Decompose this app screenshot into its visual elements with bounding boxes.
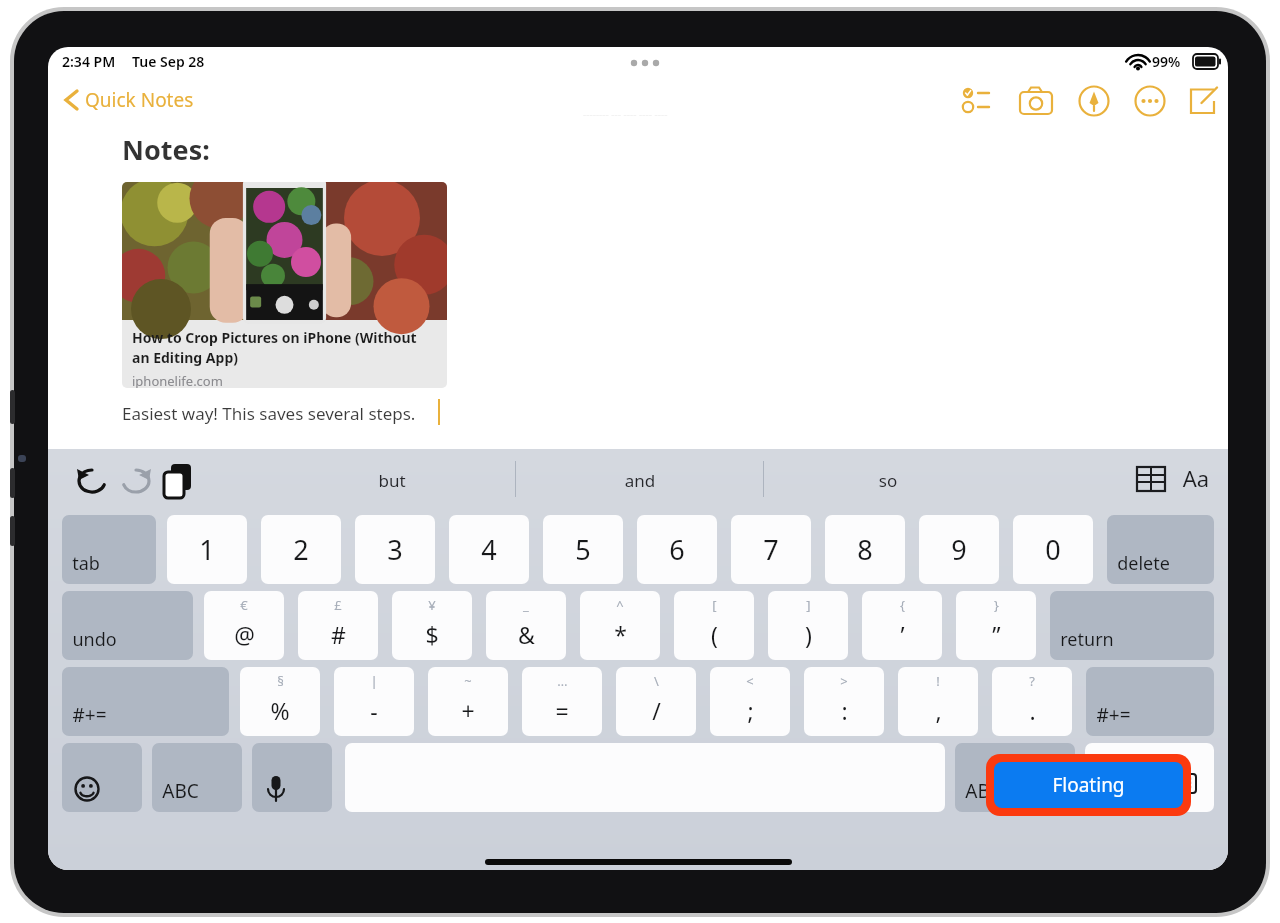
staticText: 4 (481, 531, 497, 568)
button[interactable]: Emoji (62, 743, 142, 812)
staticText: % (270, 695, 290, 726)
staticText: #+= (1096, 702, 1131, 728)
staticText: Easiest way! This saves several steps. (122, 402, 416, 425)
staticText: … (557, 672, 568, 690)
button[interactable]: ABC (152, 743, 242, 812)
staticText: . (1029, 695, 1036, 726)
staticText: ) (805, 619, 812, 650)
button[interactable]: 6 (637, 515, 717, 584)
button[interactable]: Checklist (960, 83, 996, 119)
staticText: \ (654, 672, 659, 690)
button[interactable]: [ (674, 591, 754, 660)
button[interactable]: | (334, 667, 414, 736)
staticText: ] (806, 596, 811, 614)
staticText: [ (712, 596, 717, 614)
staticText: 6 (669, 531, 685, 568)
button[interactable]: How to Crop Pictures on iPhone (Without … (122, 182, 447, 388)
staticText: 0 (1045, 531, 1061, 568)
staticText: ABC (162, 778, 199, 804)
staticText: iphonelife.com (132, 372, 223, 388)
staticText: undo (72, 627, 117, 652)
button[interactable]: } (956, 591, 1036, 660)
button[interactable]: 4 (449, 515, 529, 584)
button[interactable]: 2 (261, 515, 341, 584)
staticText: ABC (965, 778, 1002, 804)
button[interactable]: … (522, 667, 602, 736)
button[interactable]: Markup (1076, 83, 1112, 119)
staticText: 5 (575, 531, 591, 568)
button[interactable]: #+= (62, 667, 229, 736)
staticText: 2 (293, 531, 309, 568)
staticText: Notes: (122, 131, 210, 168)
staticText: ; (747, 695, 754, 726)
staticText: ¥ (428, 596, 436, 614)
button[interactable]: € (204, 591, 284, 660)
button[interactable]: 5 (543, 515, 623, 584)
button[interactable]: so (838, 469, 938, 492)
button[interactable]: ^ (580, 591, 660, 660)
staticText: Tue Sep 28 (132, 52, 205, 71)
button[interactable]: \ (616, 667, 696, 736)
button[interactable]: § (240, 667, 320, 736)
button[interactable]: Delete (1107, 515, 1214, 584)
button[interactable]: Quick Notes (60, 83, 198, 117)
button[interactable]: Undo (74, 463, 106, 495)
button[interactable]: Aa (1178, 463, 1214, 495)
button[interactable]: Paste (160, 462, 194, 496)
button[interactable]: 0 (1013, 515, 1093, 584)
staticText: } (994, 596, 999, 614)
button[interactable]: Floating (994, 762, 1183, 808)
button[interactable]: More (1132, 83, 1168, 119)
staticText: < (746, 672, 754, 690)
staticText: / (652, 695, 661, 726)
button[interactable]: ] (768, 591, 848, 660)
button[interactable]: _ (486, 591, 566, 660)
staticText: ( (711, 619, 718, 650)
button[interactable]: 3 (355, 515, 435, 584)
button[interactable]: { (862, 591, 942, 660)
button[interactable]: #+= (1086, 667, 1214, 736)
staticText: #+= (72, 702, 107, 728)
button[interactable]: New note (1186, 83, 1222, 119)
button[interactable]: < (710, 667, 790, 736)
staticText: _ (523, 596, 529, 614)
button[interactable]: ¥ (392, 591, 472, 660)
staticText: How to Crop Pictures on iPhone (Without … (132, 328, 417, 367)
staticText: 7 (763, 531, 779, 568)
staticText: tab (72, 551, 100, 576)
staticText: $ (425, 619, 439, 650)
button[interactable]: £ (298, 591, 378, 660)
button[interactable]: and (590, 469, 690, 492)
staticText: - (370, 695, 378, 726)
staticText: Quick Notes (85, 87, 194, 113)
staticText: , (935, 695, 942, 726)
button[interactable]: Dictate (252, 743, 332, 812)
staticText: ~ (464, 672, 472, 690)
staticText: delete (1117, 551, 1170, 576)
button[interactable]: Table (1136, 466, 1166, 492)
button[interactable]: return (1050, 591, 1214, 660)
button[interactable]: ABC (955, 743, 1075, 812)
staticText: § (277, 672, 284, 690)
button[interactable]: Hide keyboard (1085, 743, 1214, 812)
button[interactable]: ~ (428, 667, 508, 736)
staticText: ^ (616, 596, 624, 614)
button[interactable]: > (804, 667, 884, 736)
staticText: | (370, 672, 378, 690)
button[interactable]: undo (62, 591, 193, 660)
staticText: { (900, 596, 905, 614)
button[interactable]: ! (898, 667, 978, 736)
button[interactable]: 9 (919, 515, 999, 584)
button[interactable]: tab (62, 515, 156, 584)
staticText: : (841, 695, 848, 726)
button[interactable]: but (342, 469, 442, 492)
button[interactable]: 7 (731, 515, 811, 584)
staticText: # (331, 619, 346, 650)
button[interactable]: 1 (167, 515, 247, 584)
button[interactable]: Camera (1018, 83, 1054, 119)
button[interactable]: ? (992, 667, 1072, 736)
button[interactable]: Redo (118, 463, 150, 495)
button[interactable]: 8 (825, 515, 905, 584)
